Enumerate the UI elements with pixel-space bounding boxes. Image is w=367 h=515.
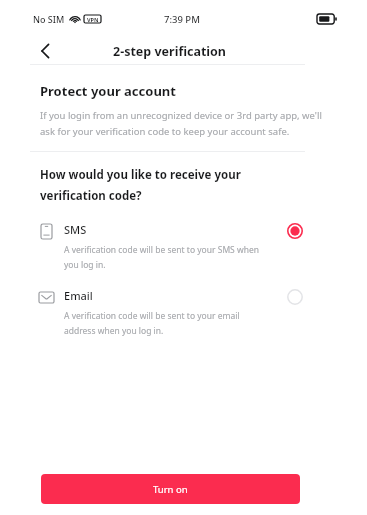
staticText: A verification code will be sent to your… [64,310,240,322]
staticText: How would you like to receive your [40,167,241,183]
staticText: verification code? [40,188,142,204]
staticText: SMS [64,222,87,237]
button[interactable]: SMS [0,222,367,271]
staticText: ask for your verification code to keep y… [40,125,290,138]
staticText: 7:39 PM [164,13,200,26]
staticText: Protect your account [40,82,176,100]
button[interactable]: Turn on [41,474,300,504]
staticText: VPN [87,16,99,23]
staticText: Email [64,288,93,303]
staticText: No SIM [33,13,65,25]
button[interactable]: Back [32,38,58,64]
button[interactable]: Email [0,288,367,337]
staticText: address when you log in. [64,325,164,337]
staticText: If you login from an unrecognized device… [40,109,322,122]
staticText: A verification code will be sent to your… [64,244,259,256]
staticText: you log in. [64,259,106,271]
staticText: 2-step verification [113,43,226,60]
staticText: Turn on [153,483,188,496]
